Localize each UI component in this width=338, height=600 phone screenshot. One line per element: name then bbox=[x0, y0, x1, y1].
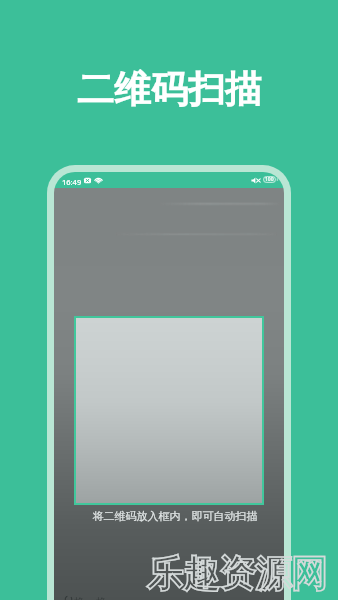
staticText: 100 bbox=[265, 176, 274, 183]
button[interactable]: 扫描框 Scan area bbox=[74, 316, 264, 505]
staticText: 换一换 bbox=[74, 595, 107, 600]
staticText: 将二维码放入框内，即可自动扫描 bbox=[60, 509, 284, 523]
staticText: 16:49 bbox=[62, 177, 82, 187]
other: 静音 Muted bbox=[251, 176, 261, 185]
button[interactable]: 换一换 bbox=[65, 595, 107, 600]
staticText: 二维码扫描 bbox=[77, 66, 262, 113]
